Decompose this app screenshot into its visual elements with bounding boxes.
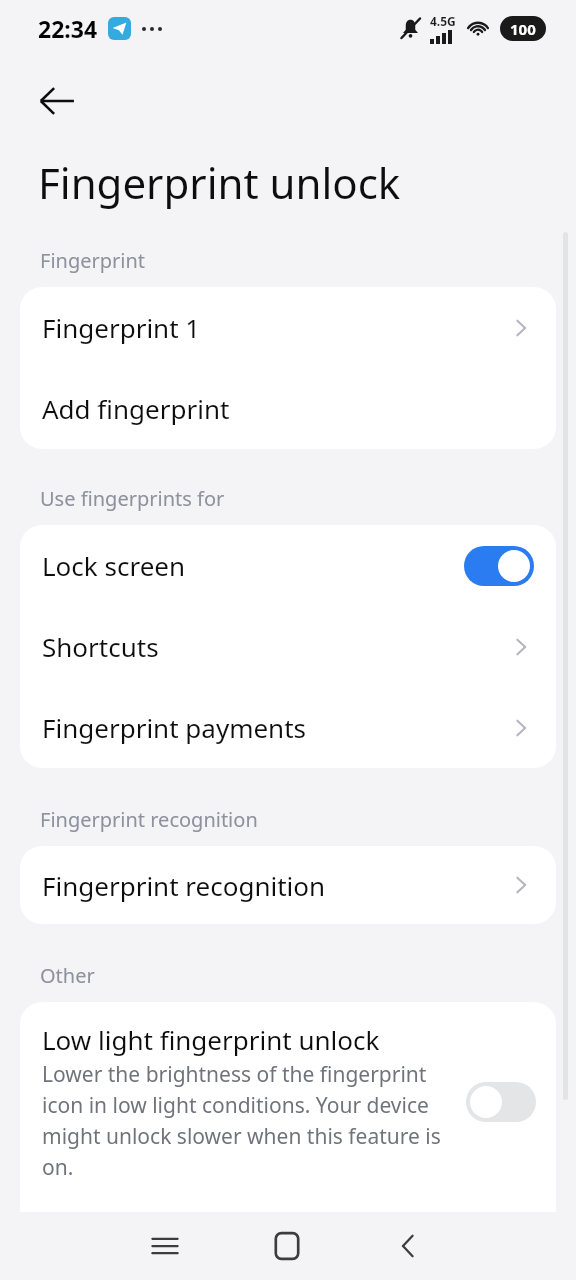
button[interactable]: On xyxy=(464,546,534,586)
staticText: Fingerprint 1 xyxy=(42,310,201,345)
staticText: 100 xyxy=(510,19,536,39)
staticText: 4.5G xyxy=(430,13,456,29)
button[interactable]: Fingerprint 1 xyxy=(20,287,556,368)
staticText: Add fingerprint xyxy=(42,391,230,426)
staticText: Fingerprint recognition xyxy=(40,806,258,833)
staticText: Show fingerprint icon when the xyxy=(42,1216,426,1251)
staticText: 22:34 xyxy=(38,13,98,44)
staticText: Other xyxy=(40,962,95,989)
button[interactable]: Fingerprint payments xyxy=(20,687,556,768)
button[interactable]: Fingerprint recognition xyxy=(20,846,556,924)
staticText: Use fingerprints for xyxy=(40,485,225,512)
button[interactable]: Low light fingerprint unlock xyxy=(20,1002,556,1197)
staticText: Fingerprint xyxy=(40,247,146,274)
button[interactable]: Add fingerprint xyxy=(20,368,556,449)
staticText: Low light fingerprint unlock xyxy=(42,1022,380,1057)
button[interactable]: Home xyxy=(245,1212,329,1280)
staticText: Shortcuts xyxy=(42,629,159,664)
button[interactable]: Off xyxy=(466,1082,536,1122)
staticText: Fingerprint unlock xyxy=(38,154,401,211)
staticText: Fingerprint payments xyxy=(42,710,307,745)
button[interactable]: Lock screen xyxy=(20,525,556,606)
button[interactable]: Back xyxy=(26,70,88,132)
button[interactable]: Recent apps xyxy=(123,1212,207,1280)
staticText: Lock screen xyxy=(42,548,186,583)
button[interactable]: Shortcuts xyxy=(20,606,556,687)
button[interactable]: Show fingerprint icon when the xyxy=(20,1197,556,1269)
staticText: Fingerprint recognition xyxy=(42,868,326,903)
staticText: Lower the brightness of the fingerprint … xyxy=(42,1060,454,1181)
button[interactable]: Back xyxy=(367,1212,451,1280)
